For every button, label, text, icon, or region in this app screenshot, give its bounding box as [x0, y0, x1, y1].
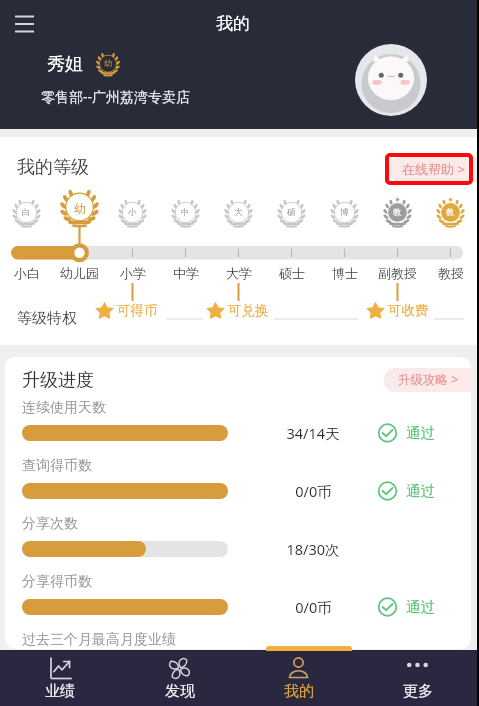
staticText: 可得币 [117, 302, 158, 319]
staticText: 在线帮助 > [402, 160, 465, 178]
staticText: 教授 [438, 265, 464, 281]
staticText: 小 [128, 207, 137, 218]
button[interactable]: Mine [239, 650, 358, 706]
staticText: 可兑换 [228, 302, 269, 319]
staticText: 查询得币数 [22, 457, 92, 475]
staticText: 白 [22, 207, 31, 218]
staticText: 大学 [226, 265, 252, 281]
staticText: 34/14天 [286, 423, 340, 443]
staticText: 升级进度 [22, 369, 94, 392]
button[interactable]: 在线帮助 > [388, 157, 477, 182]
staticText: 分享次数 [22, 515, 78, 533]
staticText: 0/0币 [295, 597, 332, 617]
staticText: 小学 [120, 265, 146, 281]
staticText: 我的 [216, 13, 250, 34]
staticText: 中学 [173, 265, 199, 281]
other: Mine [286, 656, 311, 681]
staticText: 幼儿园 [60, 265, 99, 281]
other: Discover [167, 656, 192, 681]
staticText: 教 [393, 207, 402, 218]
button[interactable]: 升级攻略 > [384, 368, 471, 392]
staticText: 发现 [165, 682, 195, 701]
staticText: 等级特权 [17, 309, 77, 328]
staticText: 副教授 [378, 265, 417, 281]
staticText: 秀姐 [47, 53, 83, 76]
staticText: 教 [446, 207, 455, 218]
staticText: 通过 [406, 482, 435, 500]
button[interactable]: Discover [120, 650, 239, 706]
staticText: 分享得币数 [22, 573, 92, 591]
staticText: 硕 [287, 207, 296, 218]
staticText: 硕士 [279, 265, 305, 281]
staticText: 升级攻略 > [398, 371, 459, 388]
staticText: 幼 [104, 58, 112, 68]
staticText: 零售部--广州荔湾专卖店 [41, 87, 191, 106]
staticText: 0/0币 [295, 481, 332, 501]
staticText: 幼 [74, 201, 86, 216]
staticText: 业绩 [45, 682, 75, 701]
button[interactable]: More [358, 650, 477, 706]
staticText: 过去三个月最高月度业绩 [22, 631, 176, 649]
staticText: 博 [340, 207, 349, 218]
other: Performance [48, 656, 73, 681]
staticText: 连续使用天数 [22, 399, 106, 417]
staticText: 大 [234, 207, 243, 218]
staticText: 18/30次 [286, 539, 340, 559]
other: More [405, 656, 430, 681]
staticText: 中 [181, 207, 190, 218]
button[interactable]: Menu [0, 0, 48, 48]
button[interactable]: Profile avatar [355, 44, 427, 116]
staticText: 我的 [284, 682, 314, 701]
staticText: 通过 [406, 598, 435, 616]
staticText: 小白 [14, 265, 40, 281]
staticText: 可收费 [388, 302, 429, 319]
staticText: 我的等级 [17, 156, 89, 179]
button[interactable]: Performance [0, 650, 120, 706]
staticText: 博士 [332, 265, 358, 281]
staticText: 通过 [406, 424, 435, 442]
staticText: 更多 [403, 682, 433, 701]
